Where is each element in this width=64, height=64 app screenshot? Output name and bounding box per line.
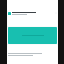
button[interactable] [8,27,57,44]
button[interactable]: App logo [8,12,11,15]
